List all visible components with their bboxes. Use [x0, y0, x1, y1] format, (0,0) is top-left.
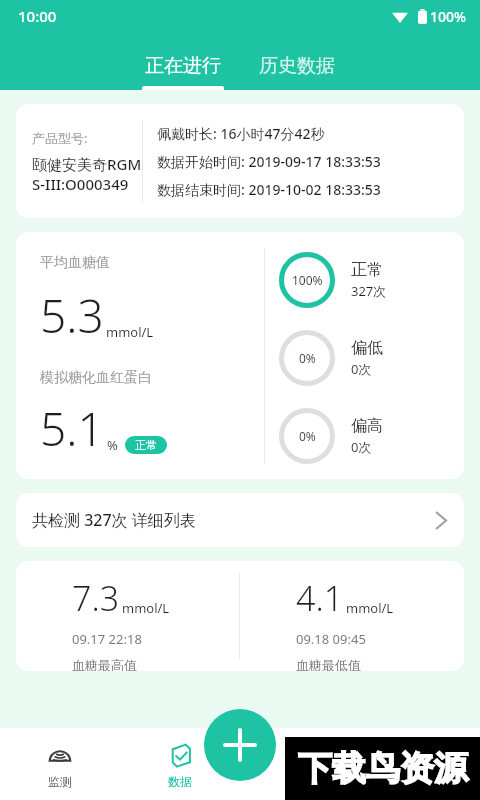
staticText: 0次: [351, 438, 372, 456]
staticText: 颐健安美奇RGM: [32, 154, 142, 174]
staticText: 100%: [292, 272, 323, 288]
button[interactable]: 历史数据: [250, 54, 344, 90]
staticText: 偏高: [351, 416, 383, 436]
staticText: mmol/L: [346, 599, 394, 617]
staticText: 4.1: [296, 575, 344, 621]
staticText: 数据开始时间: 2019-09-17 18:33:53: [157, 152, 381, 171]
staticText: 09.18 09:45: [296, 630, 366, 648]
staticText: S-III:O000349: [32, 174, 129, 194]
button[interactable]: 监测: [0, 728, 120, 800]
staticText: 7.3: [72, 575, 120, 621]
staticText: 5.1: [40, 397, 104, 460]
staticText: 平均血糖值: [40, 254, 110, 272]
staticText: 5.3: [40, 284, 104, 347]
staticText: 偏低: [351, 338, 383, 358]
staticText: 监测: [48, 774, 72, 789]
staticText: 下载鸟资源: [298, 747, 468, 790]
staticText: 共检测 327次 详细列表: [32, 509, 196, 531]
staticText: 327次: [351, 282, 387, 300]
staticText: 正常: [135, 438, 157, 452]
staticText: 血糖最低值: [296, 657, 361, 671]
staticText: 正常: [351, 260, 383, 280]
staticText: 100%: [430, 7, 466, 26]
staticText: 09.17 22:18: [72, 630, 142, 648]
staticText: 历史数据: [259, 54, 335, 78]
staticText: 数据: [168, 774, 192, 789]
staticText: 10:00: [18, 6, 57, 26]
staticText: 0%: [299, 350, 316, 366]
staticText: %: [107, 436, 118, 454]
staticText: 正在进行: [145, 54, 221, 78]
staticText: mmol/L: [106, 323, 154, 341]
button[interactable]: 共检测 327次 详细列表: [16, 493, 464, 547]
staticText: 血糖最高值: [72, 657, 137, 671]
button[interactable]: 正在进行: [136, 54, 230, 90]
staticText: 数据结束时间: 2019-10-02 18:33:53: [157, 180, 381, 199]
staticText: 产品型号:: [32, 129, 88, 147]
button[interactable]: Add: [204, 709, 276, 781]
button[interactable]: 数据: [120, 728, 240, 800]
staticText: 模拟糖化血红蛋白: [40, 369, 152, 387]
staticText: 佩戴时长: 16小时47分42秒: [157, 124, 325, 143]
staticText: mmol/L: [122, 599, 170, 617]
staticText: 0%: [299, 428, 316, 444]
staticText: 0次: [351, 360, 372, 378]
